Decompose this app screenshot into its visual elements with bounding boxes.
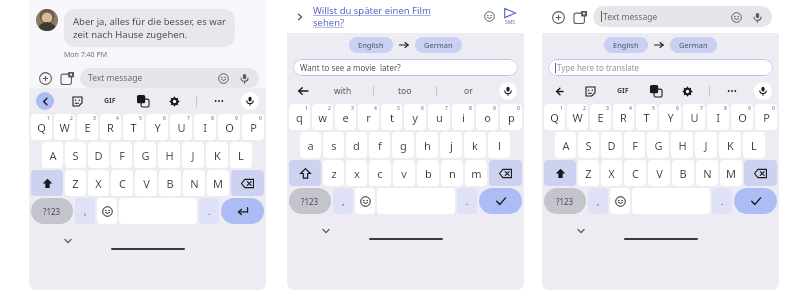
button[interactable]: j [440,132,462,158]
button[interactable]: Gallery [58,69,76,87]
button[interactable]: H [671,132,693,158]
button[interactable]: More options [723,82,741,100]
button[interactable]: Settings [165,92,183,110]
button[interactable]: Done [734,188,777,214]
button[interactable]: X [601,160,622,186]
button[interactable]: Voice input [499,82,517,100]
button[interactable]: S [65,142,86,168]
button[interactable]: Y [659,104,681,130]
button[interactable]: p [500,104,522,130]
button[interactable]: Z [578,160,599,186]
button[interactable]: or [437,78,499,104]
button[interactable]: T [636,104,657,130]
button[interactable]: U [683,104,705,130]
button[interactable]: o [476,104,498,130]
button[interactable]: J [182,142,204,168]
button[interactable]: Y [146,114,168,140]
button[interactable]: Text message [593,6,772,27]
button[interactable]: e [335,104,356,130]
button[interactable]: h [416,132,438,158]
button[interactable]: R [100,114,121,140]
button[interactable]: . [199,198,219,224]
button[interactable]: a [300,132,321,158]
button[interactable]: Backspace [489,160,522,186]
button[interactable]: s [323,132,344,158]
button[interactable]: x [346,160,367,186]
button[interactable]: Aber ja, alles für die besser, es war ze… [64,9,235,47]
button[interactable]: , [333,188,353,214]
button[interactable]: Stickers [68,92,86,110]
button[interactable]: W [567,104,588,130]
button[interactable]: Add [549,8,567,26]
button[interactable]: V [135,170,157,196]
button[interactable]: m [465,160,487,186]
button[interactable]: E [77,114,98,140]
button[interactable]: More options [210,92,228,110]
button[interactable]: Z [65,170,86,196]
button[interactable]: W [54,114,75,140]
button[interactable]: Emoji [355,188,375,214]
button[interactable]: M [207,170,229,196]
button[interactable]: F [111,142,132,168]
button[interactable]: Send SMS [504,7,516,26]
button[interactable]: B [159,170,181,196]
button[interactable]: ?123 [544,188,586,214]
button[interactable]: N [696,160,718,186]
button[interactable]: . [712,188,732,214]
button[interactable]: Hide keyboard [574,224,588,238]
button[interactable]: Willst du später einen Film sehen? [313,4,482,29]
button[interactable]: GIF [100,91,120,111]
button[interactable]: V [648,160,670,186]
button[interactable]: d [346,132,367,158]
button[interactable]: Backspace [744,160,777,186]
button[interactable]: Add [36,69,54,87]
button[interactable]: k [464,132,486,158]
button[interactable]: Hide keyboard [61,234,75,248]
button[interactable]: Q [544,104,565,130]
button[interactable]: E [590,104,611,130]
button[interactable]: Text message [80,68,259,88]
button[interactable]: German [670,37,717,53]
button[interactable]: v [393,160,415,186]
button[interactable]: z [323,160,344,186]
button[interactable]: Shift [289,160,321,186]
button[interactable]: N [183,170,205,196]
button[interactable]: Voice input [241,92,259,110]
button[interactable]: GIF [613,81,633,101]
button[interactable]: Emoji [729,10,743,24]
button[interactable]: n [441,160,463,186]
button[interactable]: Voice input [750,10,764,24]
button[interactable]: Contact avatar [36,9,58,31]
button[interactable]: b [417,160,439,186]
button[interactable]: U [170,114,192,140]
button[interactable]: K [206,142,228,168]
button[interactable]: Voice input [237,71,251,85]
button[interactable]: F [624,132,645,158]
button[interactable]: Expand [293,10,307,24]
button[interactable]: r [358,104,379,130]
button[interactable]: Stickers [581,82,599,100]
button[interactable]: Done [479,188,522,214]
button[interactable]: X [88,170,109,196]
button[interactable]: R [613,104,634,130]
button[interactable]: D [601,132,622,158]
button[interactable]: T [123,114,144,140]
button[interactable]: A [555,132,576,158]
button[interactable]: with [312,78,373,104]
button[interactable]: w [312,104,333,130]
button[interactable]: , [588,188,608,214]
button[interactable]: y [404,104,426,130]
button[interactable]: A [42,142,63,168]
button[interactable]: O [218,114,240,140]
button[interactable]: ?123 [31,198,73,224]
button[interactable]: K [719,132,741,158]
button[interactable]: too [374,78,436,104]
button[interactable]: Type here to translate [548,59,773,76]
button[interactable]: L [230,142,252,168]
button[interactable]: English [349,37,393,53]
button[interactable]: I [194,114,216,140]
button[interactable]: Expand toolbar [36,92,54,110]
button[interactable]: Hide keyboard [319,224,333,238]
button[interactable]: C [111,170,133,196]
button[interactable]: c [369,160,391,186]
